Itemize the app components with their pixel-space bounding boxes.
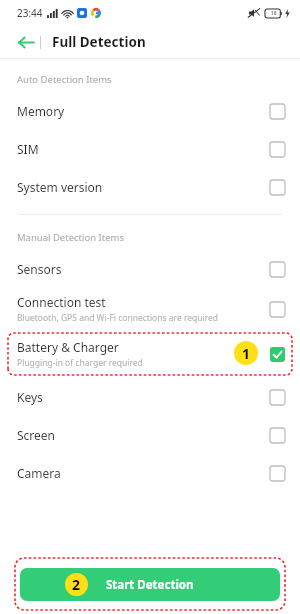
staticText: System version — [17, 179, 103, 195]
button[interactable]: Screen — [0, 416, 300, 454]
staticText: Auto Detection Items — [17, 73, 112, 86]
staticText: Camera — [17, 465, 61, 481]
staticText: Screen — [17, 427, 56, 443]
staticText: Battery & Charger — [17, 339, 119, 355]
button[interactable]: Camera — [0, 454, 300, 492]
staticText: Connection test — [17, 294, 106, 310]
staticText: 23:44 — [17, 6, 43, 20]
staticText: Plugging-in of charger required — [17, 357, 143, 369]
button[interactable]: Battery & Charger — [0, 330, 300, 378]
button[interactable]: SIM — [0, 130, 300, 168]
staticText: Bluetooth, GPS and Wi-Fi connections are… — [17, 312, 219, 324]
staticText: Sensors — [17, 261, 62, 277]
button[interactable]: Sensors — [0, 250, 300, 288]
button[interactable]: Back — [12, 28, 40, 56]
staticText: Keys — [17, 389, 43, 405]
button[interactable]: Start Detection — [20, 568, 280, 601]
staticText: 18 — [271, 10, 277, 17]
staticText: Manual Detection Items — [17, 231, 124, 244]
button[interactable]: Keys — [0, 378, 300, 416]
staticText: Start Detection — [106, 577, 194, 593]
staticText: Full Detection — [52, 33, 146, 51]
staticText: 2 — [72, 575, 81, 594]
staticText: 1 — [242, 344, 251, 363]
button[interactable]: Connection test — [0, 288, 300, 330]
button[interactable]: Memory — [0, 92, 300, 130]
button[interactable]: System version — [0, 168, 300, 206]
staticText: Memory — [17, 103, 65, 119]
staticText: SIM — [17, 141, 39, 157]
